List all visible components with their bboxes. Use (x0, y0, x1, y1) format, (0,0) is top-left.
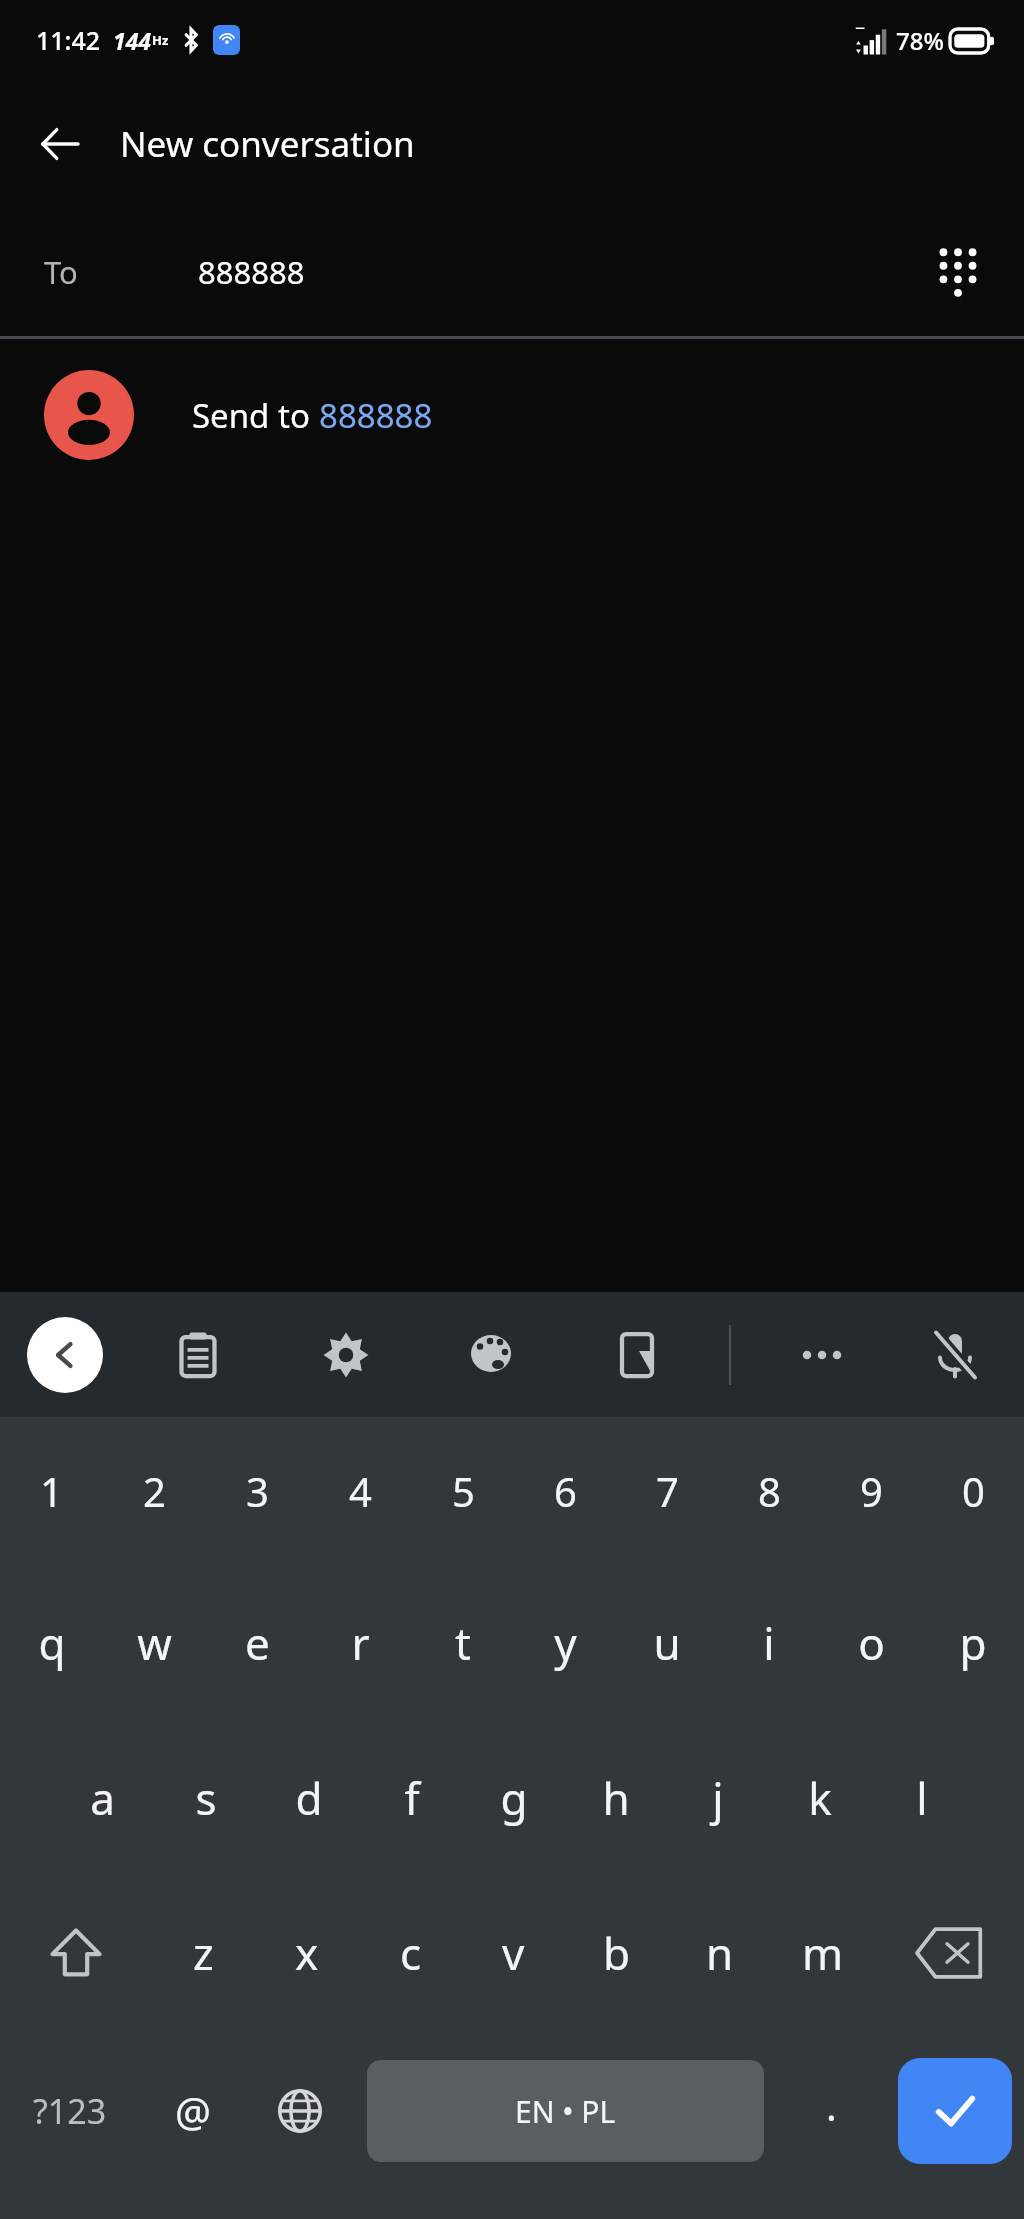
staticText: . (826, 2078, 837, 2132)
button[interactable]: b (565, 1875, 668, 2030)
button[interactable]: o (820, 1565, 922, 1720)
staticText: a (90, 1768, 115, 1828)
button[interactable]: 4 (309, 1417, 412, 1565)
button[interactable]: v (462, 1875, 565, 2030)
staticText: j (712, 1768, 724, 1828)
staticText: 888888 (198, 251, 305, 293)
button[interactable]: n (668, 1875, 771, 2030)
button[interactable]: One-handed mode (594, 1311, 682, 1399)
button[interactable]: Close toolbar (27, 1317, 103, 1393)
button[interactable]: a (51, 1720, 154, 1875)
button[interactable]: q (0, 1565, 103, 1720)
button[interactable]: u (616, 1565, 718, 1720)
staticText: @ (175, 2084, 211, 2138)
staticText: 4 (349, 1464, 372, 1518)
button[interactable]: r (309, 1565, 412, 1720)
staticText: w (137, 1613, 172, 1673)
staticText: EN • PL (515, 2091, 616, 2132)
staticText: c (400, 1923, 422, 1983)
staticText: l (916, 1768, 928, 1828)
button[interactable]: Backspace (874, 1875, 1024, 2030)
button[interactable]: 3 (206, 1417, 309, 1565)
button[interactable]: ?123 (0, 2030, 140, 2192)
staticText: 1 (40, 1464, 63, 1518)
button[interactable]: Shift (0, 1875, 151, 2030)
button[interactable]: Send (898, 2058, 1012, 2164)
staticText: u (653, 1613, 681, 1673)
button[interactable]: 2 (103, 1417, 206, 1565)
staticText: d (295, 1768, 323, 1828)
button[interactable]: 9 (820, 1417, 922, 1565)
staticText: 78% (896, 24, 944, 57)
staticText: i (763, 1613, 775, 1673)
button[interactable]: More options (778, 1311, 866, 1399)
button[interactable]: @ (140, 2030, 245, 2192)
staticText: 6 (554, 1464, 577, 1518)
staticText: z (193, 1923, 214, 1983)
button[interactable]: Dialpad (914, 228, 1002, 316)
staticText: n (706, 1923, 734, 1983)
button[interactable]: 5 (412, 1417, 514, 1565)
staticText: o (858, 1613, 885, 1673)
staticText: s (195, 1768, 217, 1828)
button[interactable]: m (771, 1875, 874, 2030)
button[interactable]: 8 (718, 1417, 820, 1565)
button[interactable]: 7 (616, 1417, 718, 1565)
staticText: y (554, 1613, 577, 1673)
button[interactable]: Change language (245, 2030, 355, 2192)
staticText: 2 (143, 1464, 166, 1518)
button[interactable]: t (412, 1565, 514, 1720)
button[interactable]: Clipboard (154, 1311, 242, 1399)
staticText: 8 (758, 1464, 781, 1518)
staticText: g (500, 1768, 528, 1828)
staticText: To (44, 251, 78, 293)
button[interactable]: s (154, 1720, 257, 1875)
button[interactable]: . (776, 2030, 886, 2192)
button[interactable]: k (769, 1720, 871, 1875)
button[interactable]: 0 (922, 1417, 1024, 1565)
button[interactable]: w (103, 1565, 206, 1720)
button[interactable]: c (359, 1875, 462, 2030)
staticText: b (603, 1923, 631, 1983)
button[interactable]: e (206, 1565, 309, 1720)
staticText: v (502, 1923, 525, 1983)
staticText: h (602, 1768, 630, 1828)
button[interactable]: f (360, 1720, 463, 1875)
button[interactable]: l (871, 1720, 973, 1875)
staticText: Send to (192, 393, 319, 438)
button[interactable]: j (667, 1720, 769, 1875)
staticText: 7 (656, 1464, 679, 1518)
button[interactable]: Theme (448, 1311, 536, 1399)
staticText: 3 (246, 1464, 269, 1518)
staticText: 11:42 (36, 23, 101, 57)
staticText: f (404, 1768, 420, 1828)
button[interactable]: p (922, 1565, 1024, 1720)
button[interactable]: 6 (514, 1417, 616, 1565)
button[interactable]: EN • PL (367, 2060, 764, 2162)
staticText: x (295, 1923, 319, 1983)
button[interactable]: g (463, 1720, 565, 1875)
staticText: ?123 (33, 2088, 107, 2134)
button[interactable]: z (151, 1875, 255, 2030)
staticText: 9 (860, 1464, 883, 1518)
staticText: k (808, 1768, 832, 1828)
staticText: 5 (452, 1464, 475, 1518)
button[interactable]: y (514, 1565, 616, 1720)
staticText: Hz (152, 31, 169, 49)
staticText: New conversation (120, 120, 415, 168)
button[interactable]: Voice input off (911, 1311, 999, 1399)
button[interactable]: h (565, 1720, 667, 1875)
button[interactable]: 1 (0, 1417, 103, 1565)
staticText: e (245, 1613, 270, 1673)
staticText: p (959, 1613, 987, 1673)
button[interactable]: Back (24, 108, 96, 180)
button[interactable]: Send to (0, 339, 1024, 491)
staticText: 0 (962, 1464, 985, 1518)
button[interactable]: Settings (302, 1311, 390, 1399)
button[interactable]: x (255, 1875, 359, 2030)
staticText: 144 (113, 25, 152, 56)
button[interactable]: i (718, 1565, 820, 1720)
staticText: t (455, 1613, 471, 1673)
button[interactable]: d (257, 1720, 360, 1875)
staticText: q (38, 1613, 66, 1673)
